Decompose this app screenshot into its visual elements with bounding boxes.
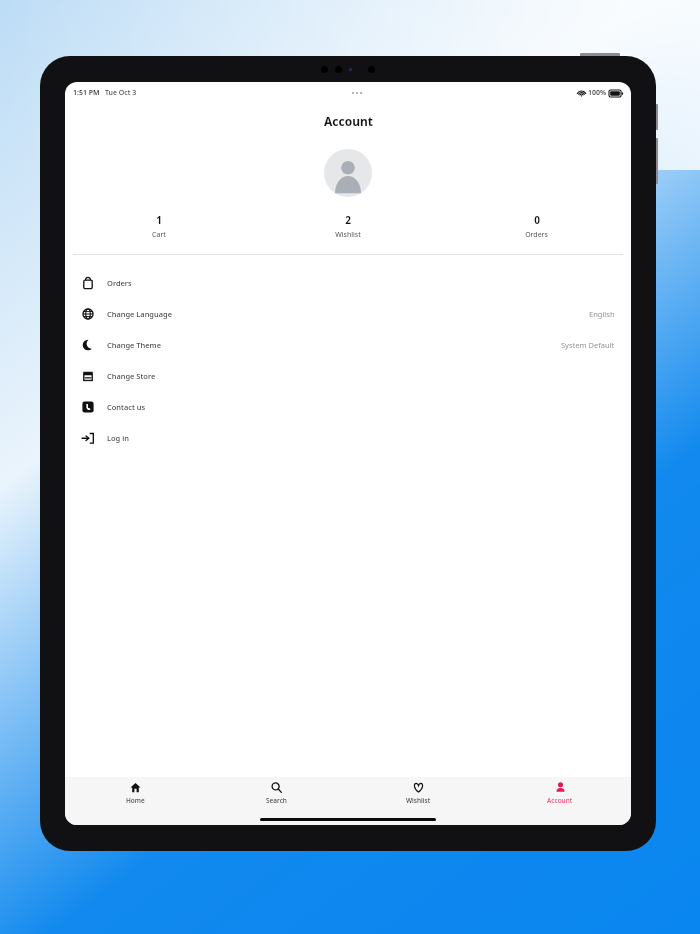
staticText: 1 (156, 213, 162, 227)
staticText: Change Store (107, 371, 156, 381)
staticText: 0 (534, 213, 540, 227)
button[interactable]: Change Store (65, 360, 631, 391)
button[interactable]: Home (65, 779, 206, 815)
staticText: Orders (525, 230, 548, 240)
staticText: Wishlist (335, 230, 361, 240)
staticText: Account (547, 796, 573, 805)
staticText: Orders (107, 278, 132, 288)
button[interactable]: Contact us (65, 391, 631, 422)
staticText: Log in (107, 433, 129, 443)
staticText: Contact us (107, 402, 146, 412)
button[interactable]: 0 (442, 211, 631, 242)
staticText: System Default (561, 340, 615, 350)
button[interactable]: Change Language (65, 298, 631, 329)
button[interactable]: Wishlist (347, 779, 489, 815)
staticText: Change Language (107, 309, 172, 319)
button[interactable]: Log in (65, 422, 631, 453)
staticText: Home (126, 796, 145, 805)
staticText: Search (266, 796, 287, 805)
button[interactable]: 1 (65, 211, 253, 242)
button[interactable]: Change Theme (65, 329, 631, 360)
staticText: Tue Oct 3 (105, 88, 137, 98)
button[interactable]: 2 (253, 211, 442, 242)
staticText: 100% (588, 88, 607, 98)
staticText: Wishlist (406, 796, 431, 805)
button[interactable]: Search (206, 779, 347, 815)
staticText: Account (324, 113, 373, 129)
staticText: 2 (345, 213, 351, 227)
staticText: Change Theme (107, 340, 161, 350)
staticText: Cart (152, 230, 166, 240)
button[interactable]: Orders (65, 267, 631, 298)
button[interactable]: Account (489, 779, 631, 815)
staticText: English (589, 309, 615, 319)
staticText: 1:51 PM (73, 88, 100, 98)
